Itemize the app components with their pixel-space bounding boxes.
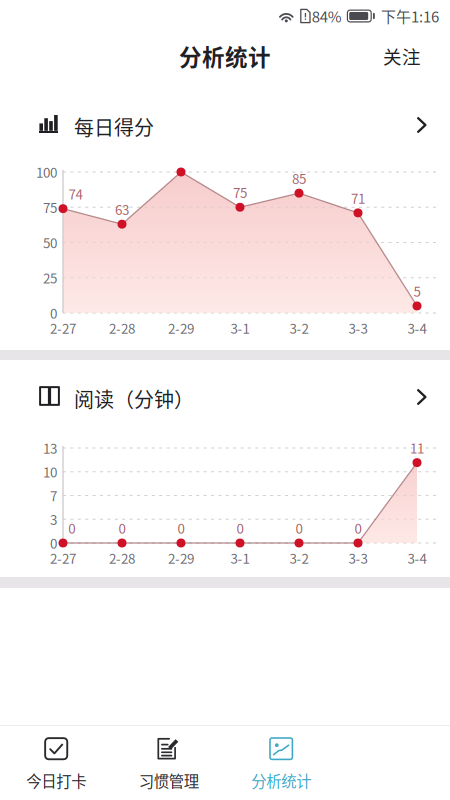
staticText: 2-29 [168, 318, 194, 338]
staticText: 50 [43, 233, 57, 252]
staticText: 3-1 [230, 318, 249, 338]
staticText: 分析统计 [251, 769, 311, 792]
staticText: 2-27 [50, 548, 76, 568]
staticText: 3-3 [348, 318, 367, 338]
staticText: 25 [43, 268, 57, 287]
staticText: 84% [312, 5, 342, 27]
staticText: 7 [50, 486, 57, 505]
staticText: 关注 [383, 43, 421, 69]
staticText: 每日得分 [74, 112, 154, 141]
staticText: 3-1 [230, 548, 249, 568]
staticText: 100 [36, 162, 57, 182]
staticText: 0 [236, 518, 243, 538]
staticText: 0 [118, 518, 125, 538]
staticText: 2-29 [168, 548, 194, 568]
staticText: 0 [68, 518, 75, 538]
button[interactable]: 关注 [371, 34, 433, 78]
staticText: 10 [43, 462, 57, 481]
staticText: 下午1:16 [381, 5, 439, 27]
staticText: 2-27 [50, 318, 76, 338]
staticText: 0 [50, 533, 57, 553]
button[interactable]: 阅读（分钟） [0, 373, 450, 419]
staticText: 75 [43, 197, 57, 217]
staticText: 3-2 [289, 318, 308, 338]
staticText: 2-28 [109, 548, 135, 568]
staticText: 2-28 [109, 318, 135, 338]
staticText: 3 [50, 509, 57, 529]
staticText: 3-4 [407, 318, 426, 338]
staticText: 阅读（分钟） [74, 384, 194, 413]
staticText: 5 [413, 281, 420, 301]
staticText: 63 [115, 199, 129, 219]
button[interactable]: 习惯管理 [112, 725, 225, 800]
staticText: 85 [292, 168, 306, 188]
staticText: 3-2 [289, 548, 308, 568]
button[interactable]: 今日打卡 [0, 725, 112, 800]
staticText: 习惯管理 [139, 769, 199, 792]
staticText: 今日打卡 [26, 769, 86, 792]
staticText: 0 [354, 518, 361, 538]
staticText: 75 [233, 182, 247, 202]
staticText: 分析统计 [179, 40, 271, 72]
staticText: 0 [295, 518, 302, 538]
staticText: 11 [410, 438, 424, 457]
button[interactable]: 每日得分 [0, 101, 450, 147]
staticText: 0 [50, 303, 57, 323]
staticText: 0 [177, 518, 184, 538]
staticText: 74 [69, 184, 83, 203]
staticText: 71 [351, 188, 365, 208]
staticText: 3-4 [407, 548, 426, 568]
staticText: 13 [43, 438, 57, 458]
button[interactable]: 分析统计 [225, 725, 337, 800]
staticText: 3-3 [348, 548, 367, 568]
